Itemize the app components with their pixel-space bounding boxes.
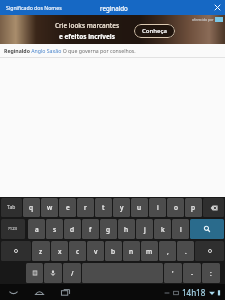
button[interactable]: s <box>46 219 63 239</box>
staticText: a <box>35 225 39 234</box>
staticText: s <box>53 225 57 234</box>
staticText: j <box>144 225 146 234</box>
button[interactable]: Shift <box>195 241 224 261</box>
button[interactable]: h <box>118 219 135 239</box>
button[interactable]: Home <box>32 285 46 299</box>
staticText: y <box>120 203 124 212</box>
button[interactable]: Close <box>209 0 225 15</box>
staticText: : <box>210 269 212 278</box>
staticText: r <box>84 203 87 212</box>
staticText: reginaldo <box>100 4 128 12</box>
staticText: - <box>191 269 194 278</box>
button[interactable]: u <box>131 198 148 217</box>
button[interactable]: f <box>82 219 99 239</box>
button[interactable]: n <box>123 241 140 261</box>
button[interactable]: / <box>63 263 81 283</box>
staticText: m <box>146 247 153 256</box>
staticText: f <box>89 225 92 234</box>
staticText: oferecido por <box>192 17 214 22</box>
button[interactable]: . <box>177 241 194 261</box>
button[interactable]: q <box>23 198 40 217</box>
button[interactable]: p <box>185 198 202 217</box>
staticText: l <box>180 225 182 234</box>
staticText: Reginaldo Anglo Saxão O que governa por … <box>4 47 136 54</box>
button[interactable]: Reginaldo Anglo Saxão O que governa por … <box>0 44 225 57</box>
staticText: ' <box>172 269 174 278</box>
staticText: , <box>167 247 169 256</box>
staticText: k <box>161 225 165 234</box>
button[interactable]: y <box>113 198 130 217</box>
button[interactable]: : <box>202 263 220 283</box>
staticText: x <box>58 247 62 256</box>
button[interactable]: Search <box>190 219 224 239</box>
button[interactable]: r <box>77 198 94 217</box>
staticText: u <box>137 203 142 212</box>
staticText: p <box>191 203 196 212</box>
button[interactable]: Back <box>6 285 20 299</box>
button[interactable]: Conheça <box>134 24 175 38</box>
button[interactable]: z <box>32 241 50 261</box>
button[interactable]: x <box>51 241 68 261</box>
staticText: Conheça <box>142 27 167 35</box>
staticText: h <box>124 225 129 234</box>
button[interactable]: c <box>69 241 86 261</box>
staticText: b <box>111 247 116 256</box>
staticText: w <box>47 203 53 212</box>
button[interactable]: Recent apps <box>58 285 72 299</box>
staticText: c <box>76 247 80 256</box>
button[interactable]: j <box>136 219 153 239</box>
staticText: Significado dos Nomes <box>6 4 62 11</box>
button[interactable]: d <box>64 219 81 239</box>
button[interactable]: Backspace <box>203 198 224 217</box>
staticText: e efeitos incríveis <box>59 32 115 41</box>
button[interactable]: i <box>149 198 166 217</box>
button[interactable]: a <box>28 219 45 239</box>
button[interactable]: g <box>100 219 117 239</box>
button[interactable]: Change language <box>26 263 43 283</box>
staticText: ?123 <box>8 226 18 232</box>
button[interactable]: l <box>172 219 189 239</box>
staticText: 14h18 <box>182 287 206 298</box>
staticText: d <box>70 225 75 234</box>
staticText: n <box>129 247 134 256</box>
button[interactable]: m <box>141 241 158 261</box>
button[interactable]: , <box>159 241 176 261</box>
button[interactable]: Tab <box>1 198 22 217</box>
button[interactable]: v <box>87 241 104 261</box>
staticText: Tab <box>7 204 16 211</box>
staticText: q <box>29 203 34 212</box>
button[interactable]: - <box>183 263 201 283</box>
button[interactable]: k <box>154 219 171 239</box>
button[interactable]: Advertisement <box>0 15 225 44</box>
staticText: . <box>185 247 187 256</box>
staticText: t <box>102 203 105 212</box>
button[interactable]: t <box>95 198 112 217</box>
button[interactable]: ' <box>164 263 182 283</box>
button[interactable]: o <box>167 198 184 217</box>
button[interactable]: w <box>41 198 58 217</box>
button[interactable]: e <box>59 198 76 217</box>
staticText: e <box>66 203 70 212</box>
staticText: o <box>174 203 178 212</box>
staticText: / <box>71 269 74 278</box>
staticText: v <box>94 247 98 256</box>
button[interactable]: Shift <box>1 241 31 261</box>
button[interactable]: Voice input <box>44 263 62 283</box>
button[interactable]: b <box>105 241 122 261</box>
staticText: z <box>39 247 43 256</box>
staticText: i <box>157 203 159 212</box>
button[interactable]: ?123 <box>1 219 25 239</box>
staticText: Crie looks marcantes <box>55 21 119 30</box>
staticText: g <box>106 225 111 234</box>
